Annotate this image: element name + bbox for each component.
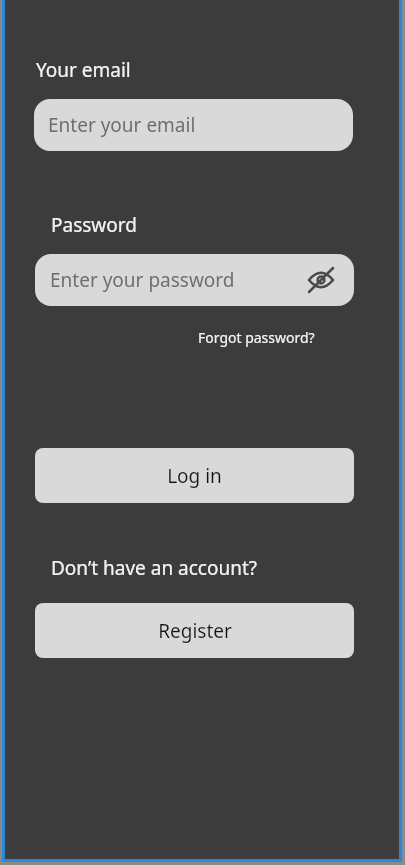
button[interactable]: Log in (35, 448, 354, 503)
staticText: Enter your password (50, 267, 235, 293)
button[interactable]: Forgot password? (198, 328, 354, 347)
button[interactable]: Show password (304, 263, 338, 297)
staticText: Log in (167, 463, 222, 489)
button[interactable]: Enter your email (34, 99, 353, 151)
staticText: Your email (36, 57, 131, 83)
staticText: Enter your email (48, 112, 196, 138)
staticText: Don’t have an account? (51, 555, 258, 581)
button[interactable]: Enter your password (35, 254, 354, 306)
button[interactable]: Register (35, 603, 354, 658)
staticText: Register (158, 618, 232, 644)
staticText: Password (51, 212, 137, 238)
